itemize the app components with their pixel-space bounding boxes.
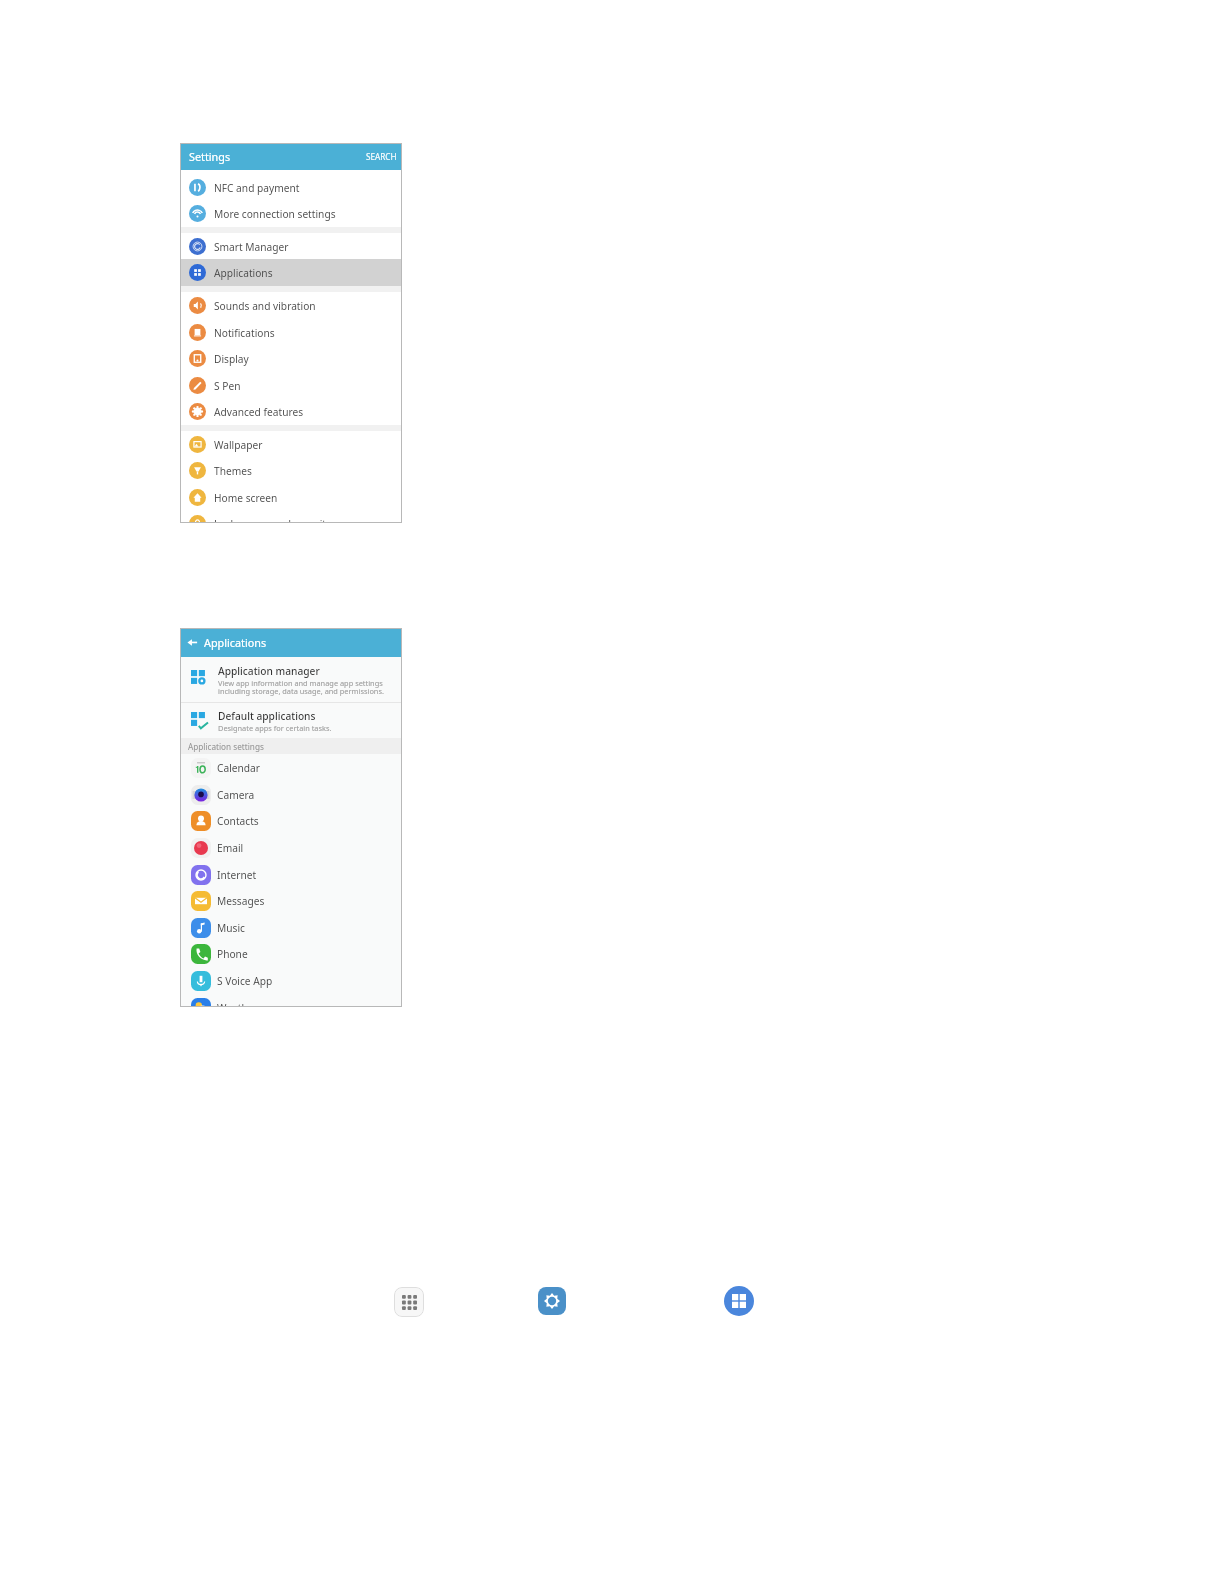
- button[interactable]: Advanced features: [180, 398, 402, 425]
- staticText: More connection settings: [214, 207, 336, 221]
- staticText: Designate apps for certain tasks.: [218, 723, 332, 733]
- staticText: Advanced features: [214, 405, 304, 419]
- staticText: View app information and manage app sett…: [218, 678, 384, 697]
- button[interactable]: Camera: [180, 781, 402, 808]
- staticText: Display: [214, 352, 249, 366]
- button[interactable]: Smart Manager: [180, 233, 402, 260]
- button[interactable]: Music: [180, 914, 402, 941]
- staticText: Applications: [204, 635, 267, 650]
- staticText: Calendar: [217, 761, 261, 775]
- button[interactable]: Calendar: [180, 754, 402, 781]
- button[interactable]: Applications: [180, 259, 402, 286]
- button[interactable]: Default applications: [180, 703, 402, 738]
- other: Back: [187, 637, 198, 648]
- button[interactable]: Application manager: [180, 657, 402, 702]
- button[interactable]: S Voice App: [180, 967, 402, 994]
- button[interactable]: Themes: [180, 457, 402, 484]
- button[interactable]: Home screen: [180, 484, 402, 511]
- staticText: Sounds and vibration: [214, 299, 316, 313]
- staticText: S Voice App: [217, 974, 273, 988]
- staticText: Smart Manager: [214, 240, 289, 254]
- staticText: Application settings: [188, 741, 264, 752]
- staticText: S Pen: [214, 379, 241, 393]
- staticText: Lock screen and security: [214, 517, 332, 523]
- staticText: Camera: [217, 788, 255, 802]
- staticText: Music: [217, 921, 245, 935]
- staticText: Wallpaper: [214, 438, 263, 452]
- staticText: Phone: [217, 947, 248, 961]
- button[interactable]: Sounds and vibration: [180, 292, 402, 319]
- staticText: Application manager: [218, 664, 320, 678]
- staticText: Messages: [217, 894, 265, 908]
- button[interactable]: Notifications: [180, 319, 402, 346]
- button[interactable]: Display: [180, 345, 402, 372]
- staticText: SEARCH: [366, 151, 397, 162]
- button[interactable]: Lock screen and security: [180, 510, 402, 523]
- staticText: Themes: [214, 464, 252, 478]
- staticText: Default applications: [218, 709, 316, 723]
- button[interactable]: Back: [180, 628, 402, 657]
- staticText: Contacts: [217, 814, 259, 828]
- button[interactable]: Wallpaper: [180, 431, 402, 458]
- staticText: Notifications: [214, 326, 275, 340]
- button[interactable]: Weather: [180, 994, 402, 1007]
- button[interactable]: S Pen: [180, 372, 402, 399]
- button[interactable]: Internet: [180, 861, 402, 888]
- button[interactable]: Settings: [538, 1287, 566, 1315]
- staticText: Settings: [189, 149, 231, 164]
- button[interactable]: Applications: [724, 1286, 754, 1316]
- button[interactable]: Email: [180, 834, 402, 861]
- button[interactable]: Messages: [180, 887, 402, 914]
- staticText: NFC and payment: [214, 181, 300, 195]
- staticText: Weather: [217, 1001, 258, 1007]
- button[interactable]: NFC and payment: [180, 174, 402, 201]
- staticText: Email: [217, 841, 244, 855]
- button[interactable]: Apps: [394, 1287, 424, 1317]
- button[interactable]: Contacts: [180, 807, 402, 834]
- staticText: Home screen: [214, 491, 278, 505]
- staticText: Internet: [217, 868, 257, 882]
- staticText: Applications: [214, 266, 273, 280]
- button[interactable]: Settings: [180, 143, 402, 170]
- button[interactable]: More connection settings: [180, 200, 402, 227]
- button[interactable]: Phone: [180, 940, 402, 967]
